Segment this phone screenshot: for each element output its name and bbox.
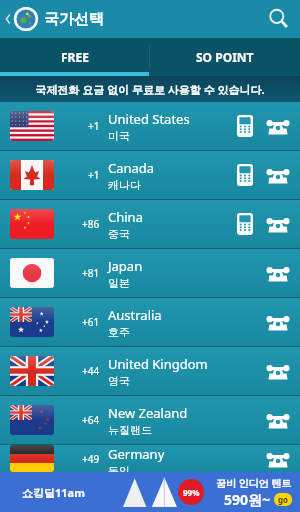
staticText: 뉴질랜드 (108, 423, 152, 437)
button[interactable]: +86 (0, 200, 300, 248)
button[interactable]: Call landline (262, 404, 294, 436)
staticText: 캐나다 (108, 178, 141, 192)
button[interactable]: Call landline (262, 355, 294, 387)
button[interactable]: Call mobile (230, 160, 260, 190)
button[interactable]: Call landline (262, 445, 294, 472)
button[interactable]: +81 (0, 249, 300, 297)
staticText: 중국 (108, 227, 130, 241)
staticText: +1 (88, 119, 100, 133)
staticText: +49 (82, 452, 100, 466)
staticText: United Kingdom (108, 355, 208, 373)
staticText: 쇼킹딜11am (22, 485, 85, 500)
staticText: +1 (88, 168, 100, 182)
button[interactable]: +49 (0, 445, 300, 472)
button[interactable]: +61 (0, 298, 300, 346)
staticText: United States (108, 110, 190, 128)
staticText: Australia (108, 306, 162, 324)
staticText: 일본 (108, 276, 130, 290)
button[interactable]: Call landline (262, 110, 294, 142)
staticText: +44 (82, 364, 100, 378)
button[interactable]: Call landline (262, 257, 294, 289)
staticText: Canada (108, 159, 155, 177)
staticText: Japan (108, 257, 143, 275)
staticText: Germany (108, 445, 165, 463)
staticText: +81 (82, 266, 100, 280)
button[interactable]: +1 (0, 102, 300, 150)
staticText: 99% (183, 487, 200, 498)
button[interactable]: SO POINT (150, 38, 300, 76)
staticText: 호주 (108, 325, 130, 339)
staticText: 영국 (108, 374, 130, 388)
button[interactable]: 국가선택 (0, 0, 112, 38)
staticText: +86 (82, 217, 100, 231)
staticText: China (108, 208, 143, 226)
button[interactable]: +44 (0, 347, 300, 395)
button[interactable]: Advertisement (0, 472, 300, 512)
staticText: 590원~ (224, 490, 271, 509)
button[interactable]: Call mobile (230, 209, 260, 239)
staticText: 꿈비 인디언 텐트 (216, 476, 292, 490)
button[interactable]: +64 (0, 396, 300, 444)
staticText: SO POINT (196, 49, 254, 65)
staticText: 국제전화 요금 없이 무료로 사용할 수 있습니다. (35, 82, 265, 97)
staticText: +61 (82, 315, 100, 329)
button[interactable]: Call landline (262, 208, 294, 240)
staticText: FREE (61, 49, 89, 65)
staticText: +64 (82, 413, 100, 427)
button[interactable]: Search (258, 0, 300, 38)
staticText: 독일 (108, 464, 130, 472)
button[interactable]: +1 (0, 151, 300, 199)
button[interactable]: Call landline (262, 159, 294, 191)
staticText: 국가선택 (44, 10, 104, 29)
staticText: New Zealand (108, 404, 188, 422)
staticText: 미국 (108, 129, 130, 143)
button[interactable]: FREE (0, 38, 149, 76)
button[interactable]: Call mobile (230, 111, 260, 141)
staticText: go (278, 494, 289, 505)
button[interactable]: Call landline (262, 306, 294, 338)
